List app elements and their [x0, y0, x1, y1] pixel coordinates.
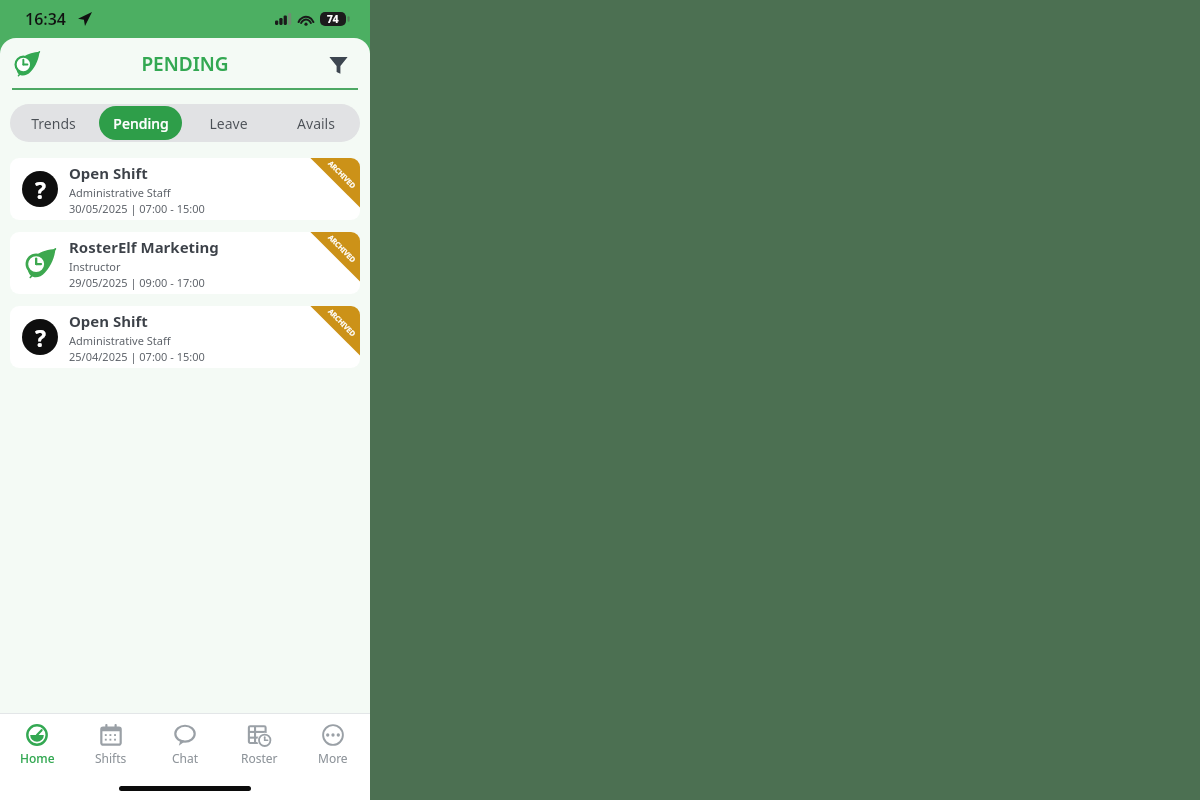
button[interactable]: Shifts — [74, 714, 148, 776]
staticText: Avails — [297, 114, 335, 133]
staticText: 25/04/2025 | 07:00 - 15:00 — [69, 349, 205, 364]
staticText: ? — [35, 322, 46, 353]
button[interactable]: Leave — [186, 106, 270, 140]
staticText: Open Shift — [69, 311, 148, 331]
button[interactable]: RosterElf home — [10, 47, 44, 81]
staticText: Administrative Staff — [69, 333, 171, 348]
staticText: Roster — [241, 750, 278, 766]
staticText: More — [318, 750, 348, 766]
staticText: Home — [20, 750, 55, 766]
staticText: Shifts — [95, 750, 127, 766]
button[interactable]: Trends — [12, 106, 95, 140]
button[interactable]: Chat — [148, 714, 222, 776]
staticText: Pending — [113, 114, 169, 133]
staticText: 30/05/2025 | 07:00 - 15:00 — [69, 201, 205, 216]
button[interactable]: RosterElf Marketing — [10, 232, 360, 294]
staticText: Administrative Staff — [69, 185, 171, 200]
staticText: Open Shift — [69, 163, 148, 183]
button[interactable]: More — [296, 714, 370, 776]
button[interactable]: Roster — [222, 714, 296, 776]
staticText: 16:34 — [25, 8, 67, 30]
staticText: PENDING — [141, 51, 229, 77]
staticText: Leave — [209, 114, 248, 133]
staticText: Chat — [172, 750, 199, 766]
staticText: Instructor — [69, 259, 121, 274]
button[interactable]: ? — [10, 158, 360, 220]
button[interactable]: Home — [0, 714, 74, 776]
button[interactable]: Avails — [274, 106, 358, 140]
staticText: ? — [35, 174, 46, 205]
button[interactable]: Filter — [322, 48, 354, 80]
button[interactable]: Pending — [99, 106, 182, 140]
staticText: RosterElf Marketing — [69, 237, 219, 257]
button[interactable]: ? — [10, 306, 360, 368]
staticText: ARCHIVED — [326, 233, 357, 265]
staticText: Trends — [31, 114, 76, 133]
staticText: 74 — [327, 12, 339, 26]
staticText: ARCHIVED — [326, 159, 357, 191]
staticText: ARCHIVED — [326, 307, 357, 339]
staticText: 29/05/2025 | 09:00 - 17:00 — [69, 275, 205, 290]
